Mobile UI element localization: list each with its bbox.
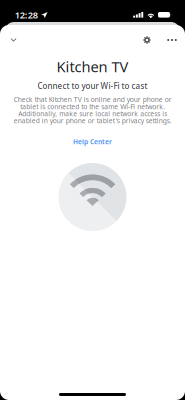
staticText: Connect to your Wi-Fi to cast: [37, 80, 147, 91]
staticText: Kitchen TV: [56, 57, 128, 76]
button[interactable]: Collapse: [0, 25, 27, 55]
staticText: Check that Kitchen TV is online and your…: [13, 95, 171, 125]
button[interactable]: Settings: [135, 25, 159, 55]
staticText: 12:28: [15, 9, 38, 21]
button[interactable]: More options: [159, 25, 185, 55]
button[interactable]: Help Center: [67, 135, 118, 148]
staticText: Help Center: [73, 137, 112, 146]
